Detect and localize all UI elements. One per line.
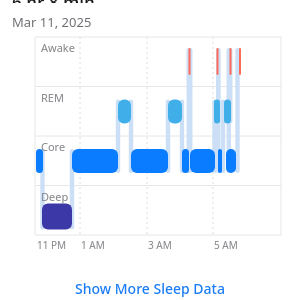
staticText: 1 AM [81, 238, 105, 252]
staticText: REM [41, 90, 64, 105]
staticText: Mar 11, 2025 [12, 13, 92, 31]
staticText: Deep [41, 189, 69, 204]
staticText: Awake [41, 40, 75, 55]
staticText: 6 hr 8 min [12, 0, 95, 3]
button[interactable]: Show More Sleep Data [0, 276, 300, 300]
staticText: 5 AM [214, 238, 238, 252]
staticText: Show More Sleep Data [75, 279, 225, 298]
staticText: 3 AM [148, 238, 172, 252]
staticText: Core [41, 139, 66, 154]
staticText: 11 PM [37, 238, 67, 252]
